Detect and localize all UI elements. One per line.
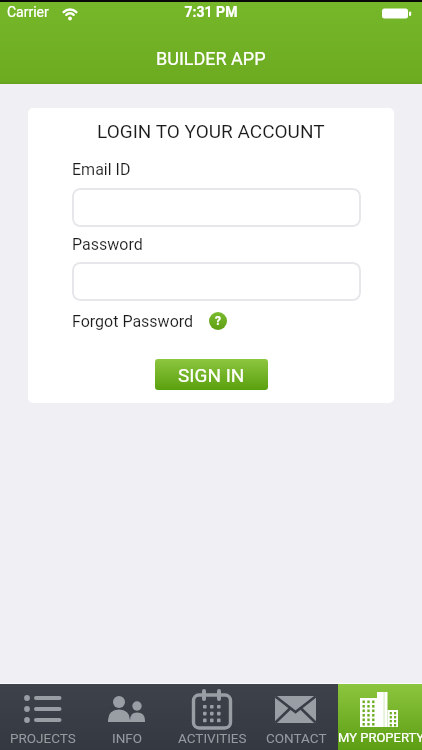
button[interactable]: MY PROPERTY xyxy=(338,684,422,750)
button[interactable] xyxy=(72,262,361,301)
staticText: MY PROPERTY xyxy=(338,730,422,745)
staticText: Carrier xyxy=(7,4,49,20)
staticText: BUILDER APP xyxy=(156,48,266,69)
staticText: INFO xyxy=(112,730,143,746)
staticText: Forgot Password xyxy=(72,312,194,331)
staticText: ? xyxy=(215,314,221,328)
button[interactable]: CONTACT xyxy=(254,684,338,750)
button[interactable]: INFO xyxy=(85,684,170,750)
button[interactable]: ACTIVITIES xyxy=(170,684,254,750)
button[interactable]: PROJECTS xyxy=(0,684,85,750)
button[interactable]: SIGN IN xyxy=(155,359,268,390)
staticText: Email ID xyxy=(72,160,131,179)
staticText: ACTIVITIES xyxy=(178,730,247,746)
staticText: SIGN IN xyxy=(178,364,245,386)
button[interactable] xyxy=(72,188,361,227)
staticText: LOGIN TO YOUR ACCOUNT xyxy=(97,120,325,142)
staticText: CONTACT xyxy=(266,730,327,746)
staticText: Password xyxy=(72,235,143,254)
staticText: PROJECTS xyxy=(10,730,76,746)
button[interactable]: Forgot Password xyxy=(72,311,227,331)
staticText: 7:31 PM xyxy=(0,4,422,20)
